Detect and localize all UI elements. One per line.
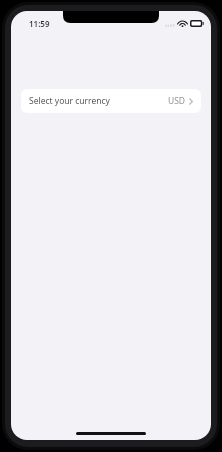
- button[interactable]: Select your currency: [21, 89, 201, 113]
- staticText: USD: [167, 95, 185, 107]
- staticText: Select your currency: [29, 95, 110, 107]
- staticText: 11:59: [29, 18, 50, 29]
